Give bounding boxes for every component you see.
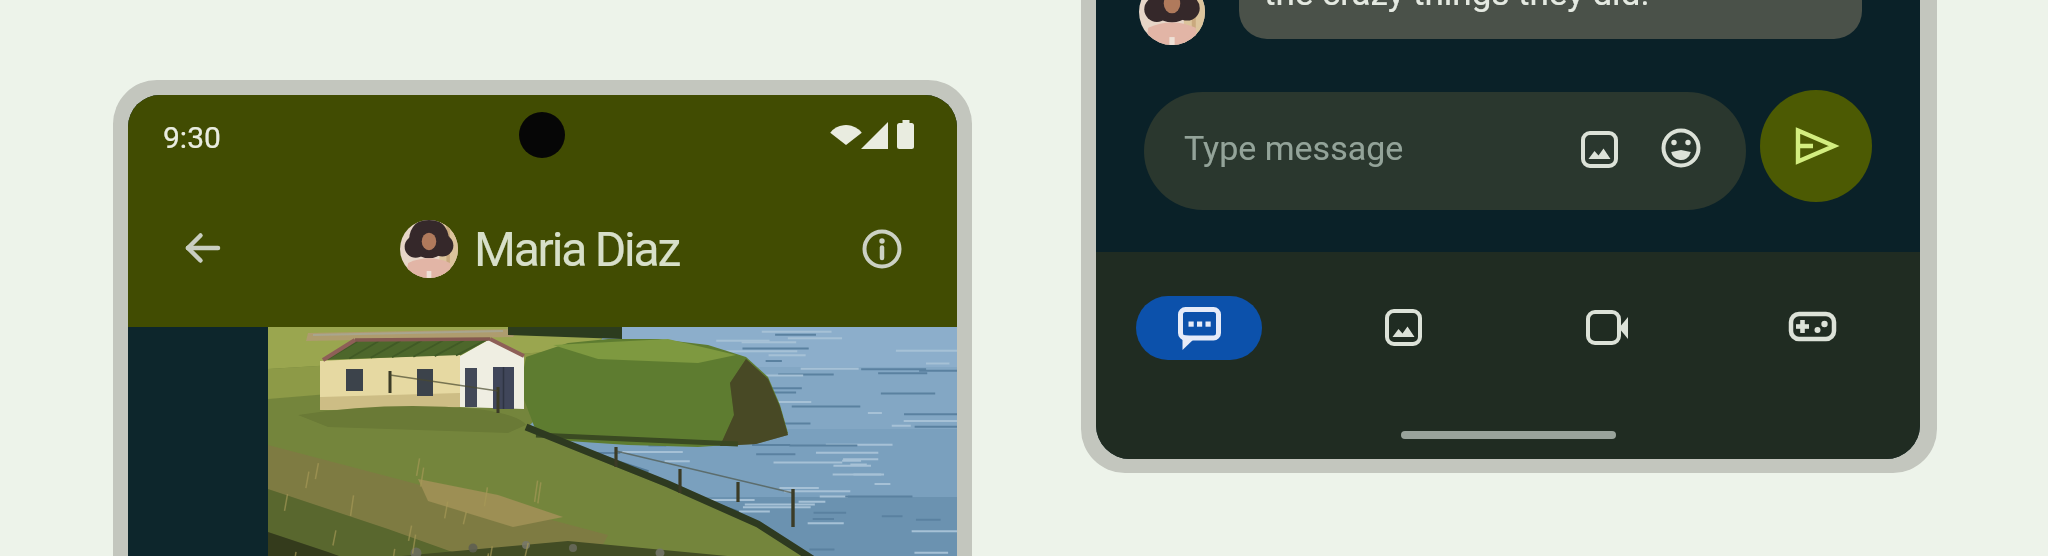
button[interactable]: Type message bbox=[1144, 92, 1746, 210]
button[interactable] bbox=[1780, 295, 1844, 359]
button[interactable] bbox=[1136, 296, 1262, 360]
button[interactable] bbox=[862, 229, 902, 269]
button[interactable] bbox=[1661, 128, 1701, 168]
button[interactable] bbox=[185, 230, 221, 266]
staticText: 9:30 bbox=[163, 120, 221, 155]
staticText: Type message bbox=[1184, 128, 1404, 168]
button[interactable]: the crazy things they did! bbox=[1239, 0, 1862, 39]
button[interactable] bbox=[1372, 295, 1436, 359]
staticText: the crazy things they did! bbox=[1264, 0, 1650, 14]
button[interactable] bbox=[1576, 295, 1640, 359]
button[interactable] bbox=[1581, 131, 1619, 169]
button[interactable] bbox=[400, 220, 458, 278]
button[interactable] bbox=[1760, 90, 1872, 202]
staticText: Maria Diaz bbox=[474, 221, 680, 277]
button[interactable] bbox=[268, 327, 957, 556]
